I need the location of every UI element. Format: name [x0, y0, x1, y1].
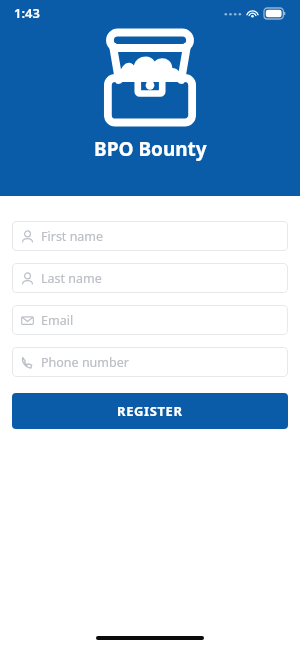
- button[interactable]: Phone number: [12, 347, 288, 377]
- button[interactable]: Email: [12, 305, 288, 335]
- button[interactable]: Last name: [12, 263, 288, 293]
- staticText: Email: [41, 312, 74, 329]
- staticText: Phone number: [41, 354, 129, 371]
- button[interactable]: REGISTER: [12, 393, 288, 429]
- staticText: Last name: [41, 270, 102, 287]
- staticText: BPO Bounty: [94, 136, 207, 162]
- staticText: 1:43: [14, 4, 40, 22]
- staticText: REGISTER: [117, 402, 183, 420]
- staticText: First name: [41, 228, 104, 245]
- button[interactable]: First name: [12, 221, 288, 251]
